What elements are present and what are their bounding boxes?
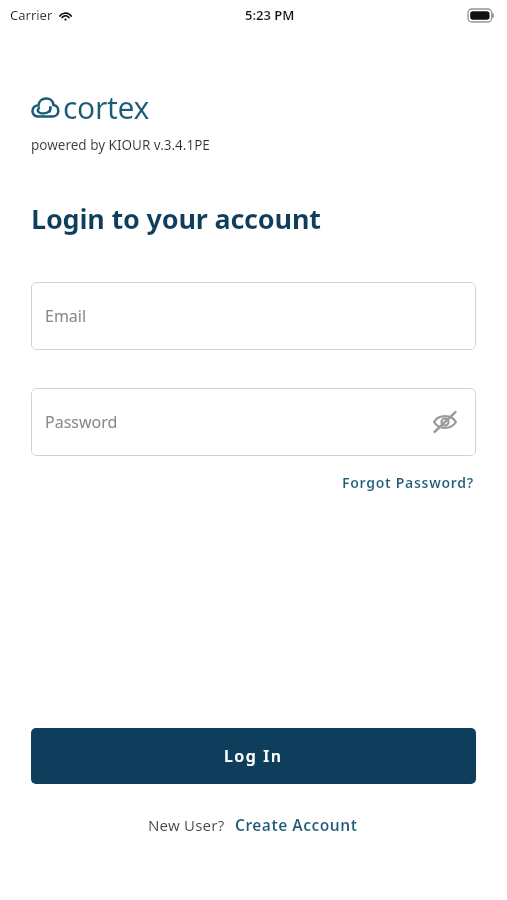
staticText: Forgot Password? (342, 473, 474, 492)
button[interactable]: Create Account (233, 811, 360, 838)
staticText: Email (45, 305, 87, 327)
staticText: Login to your account (31, 200, 321, 237)
staticText: Password (45, 411, 118, 433)
staticText: powered by KIOUR v.3.4.1PE (31, 136, 210, 154)
staticText: Create Account (235, 814, 358, 835)
staticText: New User? (148, 815, 225, 835)
button[interactable]: Forgot Password? (340, 470, 476, 495)
button[interactable]: Show password (424, 401, 466, 443)
button[interactable]: Log In (31, 728, 476, 784)
staticText: 5:23 PM (245, 6, 295, 24)
button[interactable]: Email (31, 282, 476, 350)
staticText: cortex (63, 87, 150, 128)
staticText: Log In (224, 745, 283, 767)
staticText: Carrier (10, 6, 53, 24)
button[interactable]: Password (31, 388, 476, 456)
